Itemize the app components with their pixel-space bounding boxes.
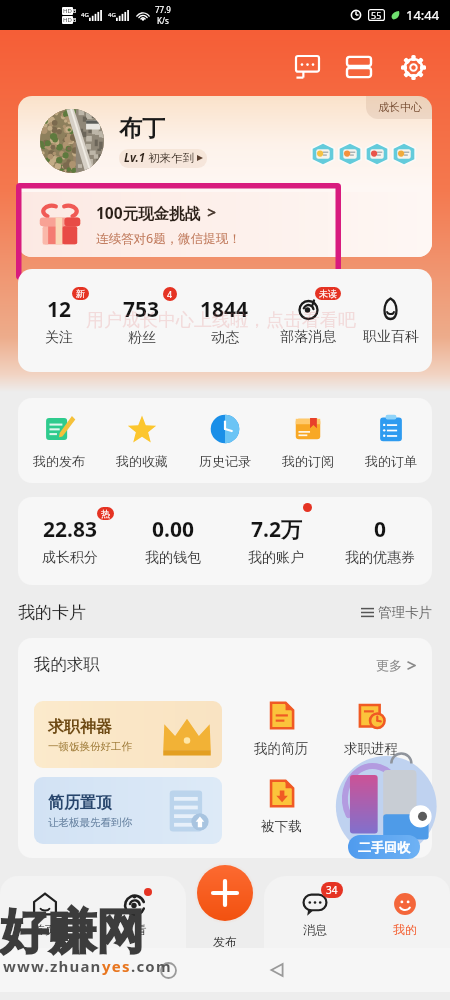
button[interactable]: 求职神器	[34, 701, 222, 768]
staticText: 布丁	[119, 114, 165, 143]
staticText: 被下载	[261, 818, 302, 835]
button[interactable]	[338, 142, 362, 166]
staticText: 热	[101, 508, 110, 519]
button[interactable]: 被下载	[236, 779, 326, 835]
staticText: 0.00	[152, 515, 194, 544]
staticText: 粉丝	[128, 329, 156, 347]
staticText: 部落消息	[280, 328, 336, 346]
staticText: 100元现金挑战	[96, 202, 201, 223]
button[interactable]: 1844	[183, 295, 266, 347]
button[interactable]: 首页	[0, 880, 90, 948]
button[interactable]: Feedback	[285, 45, 329, 89]
staticText: 我的账户	[248, 549, 304, 567]
staticText: 一顿饭换份好工作	[48, 740, 132, 753]
button[interactable]: Split screen	[337, 45, 381, 89]
staticText: 14:44	[406, 6, 440, 24]
button[interactable]	[392, 142, 416, 166]
button[interactable]	[311, 142, 335, 166]
button[interactable]: 更多	[376, 657, 416, 673]
button[interactable]: 12	[18, 295, 100, 347]
staticText: 55	[371, 9, 382, 21]
staticText: 我的	[393, 922, 417, 937]
button[interactable]: 0	[328, 515, 432, 567]
staticText: 趣看	[123, 922, 147, 937]
staticText: 新	[76, 288, 85, 299]
button[interactable]: Lv.1	[119, 149, 207, 168]
button[interactable]: 100元现金挑战	[18, 192, 432, 257]
staticText: 1844	[200, 295, 249, 324]
button[interactable]: 753	[100, 295, 183, 347]
staticText: 发布	[213, 934, 237, 948]
staticText: 消息	[303, 922, 327, 937]
staticText: 让老板最先看到你	[48, 816, 132, 829]
button[interactable]: Home	[160, 962, 177, 979]
staticText: 二手回收	[358, 839, 410, 855]
staticText: 77.9	[155, 4, 171, 15]
staticText: 成长中心	[378, 100, 422, 114]
staticText: 4	[167, 288, 173, 300]
staticText: B	[73, 8, 77, 15]
button[interactable]: 求职进程	[326, 701, 416, 757]
staticText: 未读	[319, 288, 337, 299]
button[interactable]: Back	[269, 962, 285, 978]
staticText: Lv.1	[124, 150, 146, 166]
staticText: 关注	[45, 329, 73, 347]
staticText: yes	[102, 956, 131, 976]
staticText: K/s	[157, 15, 169, 26]
button[interactable]: 34	[270, 880, 360, 948]
staticText: 我的卡片	[18, 602, 86, 623]
staticText: 好赚网	[0, 902, 144, 962]
staticText: 更多	[376, 657, 402, 673]
staticText: 7.2万	[251, 515, 302, 544]
staticText: 商家	[358, 818, 385, 835]
button[interactable]: 我的发布	[18, 412, 100, 469]
staticText: 34	[326, 883, 338, 897]
staticText: HD	[63, 16, 72, 24]
staticText: 历史记录	[199, 453, 251, 469]
staticText: 4G	[81, 11, 89, 19]
staticText: 我的收藏	[116, 453, 168, 469]
button[interactable]: 职业百科	[349, 296, 432, 346]
staticText: 动态	[211, 329, 239, 347]
staticText: 我的订单	[365, 453, 417, 469]
staticText: 我的求职	[34, 654, 100, 675]
staticText: 12	[47, 295, 72, 324]
button[interactable]: 趣看	[90, 880, 180, 948]
button[interactable]: 商家	[326, 779, 416, 835]
button[interactable]: 二手回收	[328, 758, 440, 863]
staticText: 我的简历	[254, 740, 308, 757]
button[interactable]: 未读	[266, 296, 349, 346]
staticText: 求职神器	[48, 717, 112, 737]
staticText: B	[73, 17, 77, 24]
button[interactable]: 我的订阅	[266, 412, 349, 469]
button[interactable]: 管理卡片	[361, 604, 432, 621]
button[interactable]	[365, 142, 389, 166]
button[interactable]: Avatar	[40, 109, 104, 173]
staticText: 用户成长中心上线啦，点击看看吧	[86, 309, 356, 332]
staticText: 我的钱包	[145, 549, 201, 567]
button[interactable]: 0.00	[121, 515, 224, 567]
staticText: 简历置顶	[48, 793, 112, 813]
button[interactable]: 我的	[360, 880, 450, 948]
button[interactable]: 我的简历	[236, 701, 326, 757]
staticText: 职业百科	[363, 328, 419, 346]
staticText: .com	[131, 956, 172, 976]
button[interactable]: 我的订单	[349, 412, 432, 469]
button[interactable]: 7.2万	[224, 515, 328, 567]
button[interactable]: 历史记录	[183, 412, 266, 469]
staticText: 4G	[108, 11, 116, 19]
button[interactable]: 发布	[180, 880, 270, 948]
staticText: 我的优惠券	[345, 549, 415, 567]
staticText: 成长积分	[42, 549, 98, 567]
staticText: 753	[123, 295, 160, 324]
button[interactable]: Post	[197, 865, 253, 921]
staticText: 初来乍到	[148, 151, 194, 165]
button[interactable]: 简历置顶	[34, 777, 222, 844]
button[interactable]: 我的收藏	[100, 412, 183, 469]
button[interactable]: Settings	[391, 45, 435, 89]
staticText: 首页	[33, 922, 57, 937]
button[interactable]: 成长中心	[366, 96, 432, 119]
staticText: 连续答对6题，微信提现！	[96, 230, 241, 247]
staticText: HD	[63, 7, 72, 15]
button[interactable]: 22.83	[18, 515, 121, 567]
